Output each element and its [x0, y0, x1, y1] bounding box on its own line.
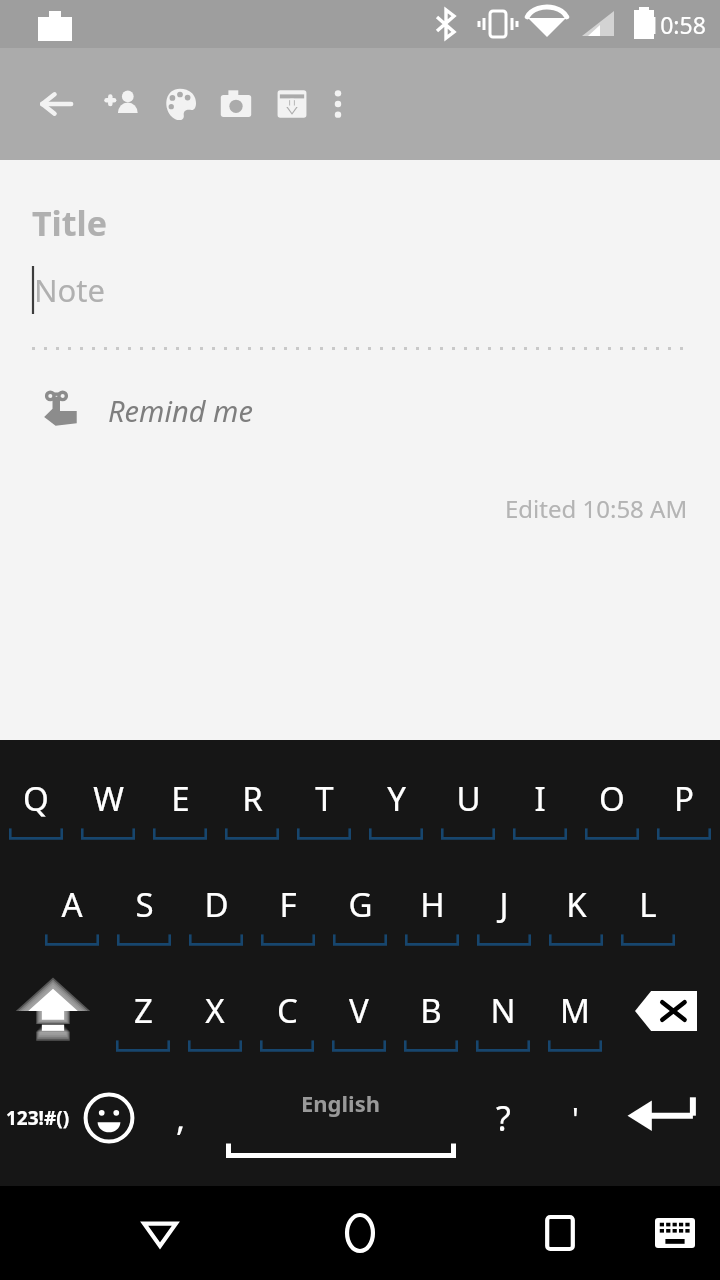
button[interactable]: E — [148, 762, 212, 842]
button[interactable]: H — [400, 868, 464, 948]
staticText: 123!#() — [6, 1105, 70, 1131]
button[interactable]: Back — [20, 68, 92, 140]
staticText: ? — [496, 1095, 511, 1141]
button[interactable]: Title — [0, 200, 720, 246]
button[interactable]: Recents — [524, 1197, 596, 1269]
staticText: A — [61, 882, 83, 927]
staticText: X — [205, 988, 225, 1033]
button[interactable]: U — [436, 762, 500, 842]
button[interactable]: W — [76, 762, 140, 842]
button[interactable]: Emoji — [74, 1078, 144, 1158]
staticText: S — [135, 882, 154, 927]
staticText: Edited 10:58 AM — [505, 492, 688, 525]
button[interactable]: C — [255, 974, 319, 1054]
button[interactable]: R — [220, 762, 284, 842]
button[interactable]: ? — [472, 1078, 534, 1158]
staticText: T — [315, 776, 334, 821]
button[interactable]: Back — [124, 1197, 196, 1269]
button[interactable]: F — [256, 868, 320, 948]
staticText: O — [599, 776, 625, 821]
button[interactable]: Change color — [144, 68, 216, 140]
button[interactable]: Z — [111, 974, 175, 1054]
button[interactable]: J — [472, 868, 536, 948]
staticText: F — [279, 882, 297, 927]
staticText: H — [420, 882, 445, 927]
staticText: Y — [387, 776, 406, 821]
button[interactable]: Space — [212, 1078, 470, 1168]
staticText: L — [639, 882, 657, 927]
button[interactable]: L — [616, 868, 680, 948]
staticText: J — [499, 882, 509, 927]
button[interactable]: Home — [324, 1197, 396, 1269]
staticText: V — [349, 988, 369, 1033]
button[interactable]: 123!#() — [0, 1078, 76, 1158]
button[interactable]: O — [580, 762, 644, 842]
button[interactable]: P — [652, 762, 716, 842]
button[interactable]: Remind me — [0, 388, 720, 432]
button[interactable]: X — [183, 974, 247, 1054]
staticText: U — [456, 776, 481, 821]
staticText: D — [204, 882, 229, 927]
staticText: ' — [572, 1098, 579, 1139]
staticText: English — [301, 1088, 381, 1118]
button[interactable]: S — [112, 868, 176, 948]
staticText: I — [534, 776, 546, 821]
staticText: C — [277, 988, 298, 1033]
button[interactable]: B — [399, 974, 463, 1054]
staticText: N — [490, 988, 516, 1033]
staticText: E — [171, 776, 190, 821]
button[interactable]: I — [508, 762, 572, 842]
staticText: Note — [34, 269, 105, 311]
button[interactable]: Q — [4, 762, 68, 842]
button[interactable]: , — [150, 1078, 212, 1158]
button[interactable]: Backspace — [616, 972, 716, 1050]
staticText: M — [560, 988, 590, 1033]
button[interactable]: Add collaborator — [88, 68, 160, 140]
staticText: Title — [32, 200, 107, 246]
button[interactable]: More options — [302, 68, 374, 140]
staticText: B — [420, 988, 442, 1033]
staticText: Z — [134, 988, 153, 1033]
button[interactable]: Archive — [256, 68, 328, 140]
staticText: 10:58 — [647, 9, 706, 40]
staticText: G — [348, 882, 373, 927]
button[interactable]: Shift — [4, 972, 102, 1050]
staticText: Q — [23, 776, 49, 821]
staticText: R — [242, 776, 263, 821]
button[interactable]: V — [327, 974, 391, 1054]
button[interactable]: Note — [0, 266, 720, 314]
button[interactable]: G — [328, 868, 392, 948]
button[interactable]: D — [184, 868, 248, 948]
staticText: W — [93, 776, 124, 821]
button[interactable]: Enter — [608, 1078, 720, 1158]
staticText: K — [566, 882, 587, 927]
button[interactable]: T — [292, 762, 356, 842]
staticText: Remind me — [108, 391, 253, 430]
button[interactable]: K — [544, 868, 608, 948]
button[interactable]: Add image — [200, 68, 272, 140]
button[interactable]: Y — [364, 762, 428, 842]
button[interactable]: ' — [546, 1078, 604, 1158]
staticText: P — [674, 776, 694, 821]
button[interactable]: N — [471, 974, 535, 1054]
staticText: , — [176, 1095, 186, 1141]
button[interactable]: A — [40, 868, 104, 948]
button[interactable]: Switch keyboard — [644, 1202, 706, 1264]
button[interactable]: M — [543, 974, 607, 1054]
